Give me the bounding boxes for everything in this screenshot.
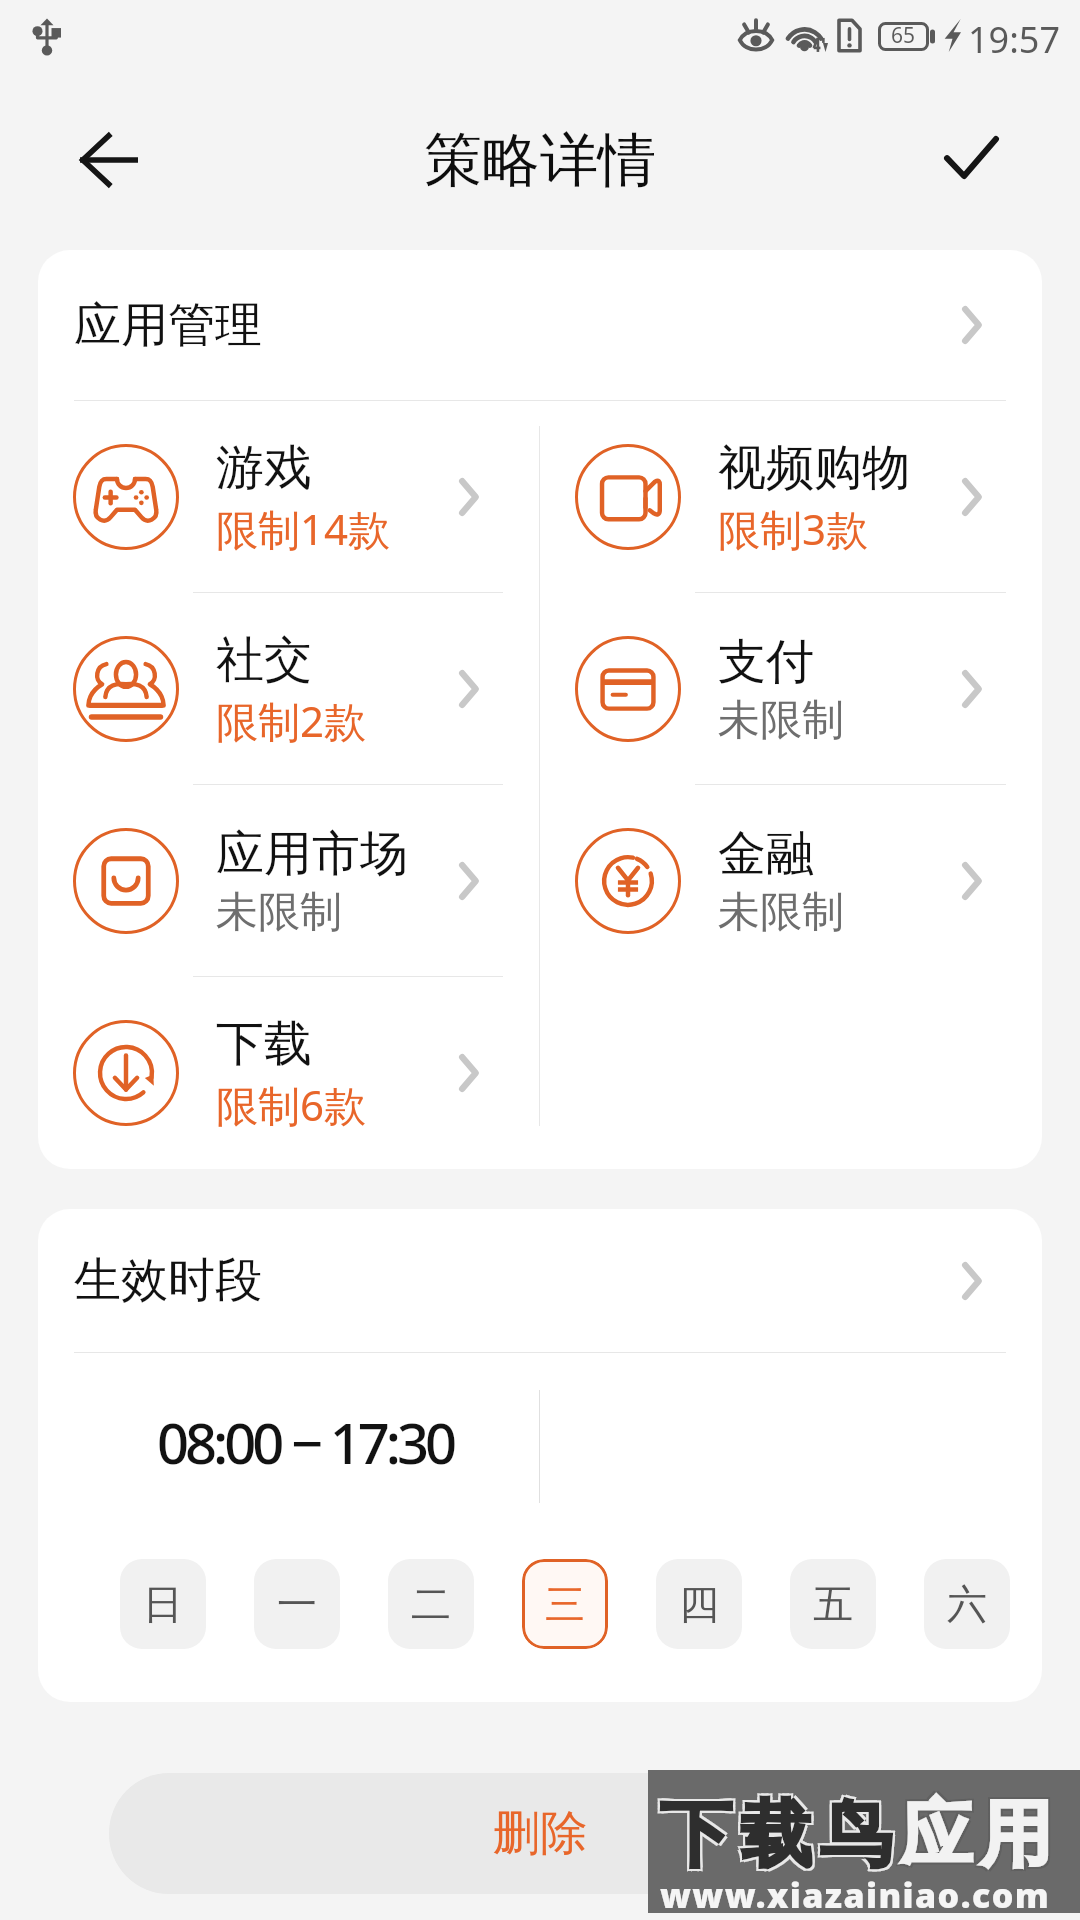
staticText: 下载鸟 bbox=[656, 1790, 896, 1881]
staticText: 社交 bbox=[216, 630, 312, 690]
staticText: 三 bbox=[545, 1579, 585, 1629]
staticText: 应用 bbox=[894, 1792, 1054, 1883]
button[interactable]: 六 bbox=[924, 1559, 1010, 1649]
button[interactable]: 下载 bbox=[38, 977, 539, 1169]
button[interactable]: 游戏 bbox=[38, 401, 539, 593]
staticText: 未限制 bbox=[718, 694, 844, 747]
staticText: 下载鸟 bbox=[654, 1792, 894, 1883]
button[interactable]: 日 bbox=[120, 1559, 206, 1649]
staticText: 应用 bbox=[898, 1788, 1058, 1879]
staticText: 生效时段 bbox=[74, 1251, 262, 1310]
staticText: 限制14款 bbox=[216, 500, 391, 557]
button[interactable]: Back bbox=[64, 115, 154, 205]
button[interactable]: 支付 bbox=[540, 593, 1042, 785]
button[interactable]: 应用市场 bbox=[38, 785, 539, 977]
staticText: www.xiazainiao.com bbox=[660, 1872, 1051, 1918]
button[interactable]: 生效时段 bbox=[38, 1209, 1042, 1352]
staticText: 下载 bbox=[216, 1014, 312, 1074]
staticText: 六 bbox=[947, 1579, 987, 1629]
staticText: 游戏 bbox=[216, 438, 312, 498]
staticText: 支付 bbox=[718, 632, 814, 692]
staticText: 未限制 bbox=[216, 886, 342, 939]
staticText: 策略详情 bbox=[424, 124, 656, 197]
staticText: 08:00 − 17:30 bbox=[157, 1404, 454, 1480]
staticText: 二 bbox=[411, 1579, 451, 1629]
staticText: 金融 bbox=[718, 824, 814, 884]
staticText: 限制2款 bbox=[216, 692, 367, 749]
staticText: 日 bbox=[143, 1579, 183, 1629]
staticText: 未限制 bbox=[718, 886, 844, 939]
staticText: 下载鸟 bbox=[658, 1788, 898, 1879]
staticText: 限制6款 bbox=[216, 1076, 367, 1133]
staticText: 五 bbox=[813, 1579, 853, 1629]
staticText: 下载鸟 bbox=[654, 1788, 894, 1879]
button[interactable]: 社交 bbox=[38, 593, 539, 785]
button[interactable]: 二 bbox=[388, 1559, 474, 1649]
button[interactable]: 一 bbox=[254, 1559, 340, 1649]
staticText: 应用 bbox=[896, 1790, 1056, 1881]
staticText: 下载鸟 bbox=[658, 1792, 898, 1883]
button[interactable]: 视频购物 bbox=[540, 401, 1042, 593]
staticText: 限制3款 bbox=[718, 500, 869, 557]
staticText: 19:57 bbox=[968, 15, 1061, 64]
button[interactable]: 四 bbox=[656, 1559, 742, 1649]
staticText: 删除 bbox=[493, 1804, 587, 1863]
staticText: 一 bbox=[277, 1579, 317, 1629]
button[interactable]: 金融 bbox=[540, 785, 1042, 977]
button[interactable]: Confirm bbox=[926, 115, 1016, 205]
staticText: 应用 bbox=[894, 1788, 1054, 1879]
button[interactable]: 应用管理 bbox=[38, 250, 1042, 400]
button[interactable]: 删除 bbox=[109, 1773, 971, 1894]
button[interactable]: 五 bbox=[790, 1559, 876, 1649]
staticText: 视频购物 bbox=[718, 438, 910, 498]
button[interactable]: 三 bbox=[522, 1559, 608, 1649]
staticText: 四 bbox=[679, 1579, 719, 1629]
staticText: 应用市场 bbox=[216, 824, 408, 884]
staticText: 应用管理 bbox=[74, 296, 262, 355]
staticText: 应用 bbox=[898, 1792, 1058, 1883]
staticText: 65 bbox=[891, 21, 916, 50]
